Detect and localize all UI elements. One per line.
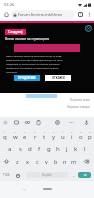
staticText: 4	[34, 130, 36, 133]
button[interactable]: ?123	[1, 169, 12, 181]
button[interactable]: j	[62, 142, 71, 155]
button[interactable]: Shift	[0, 155, 12, 167]
staticText: страница.	[6, 70, 18, 73]
staticText: n	[63, 158, 67, 165]
button[interactable]: Clipboard	[34, 118, 42, 126]
button[interactable]: Backspace	[78, 155, 94, 167]
button[interactable]: 6	[49, 129, 58, 142]
staticText: Најнови отвори	[67, 105, 90, 109]
staticText: ПРОДОЛЖИ	[18, 76, 36, 80]
staticText: w	[13, 133, 18, 141]
staticText: m	[71, 158, 77, 165]
staticText: o	[79, 133, 83, 141]
button[interactable]: s	[15, 142, 25, 155]
staticText: k	[74, 145, 78, 153]
staticText: i	[71, 133, 73, 141]
button[interactable]: 7	[58, 129, 67, 142]
staticText: 5	[44, 130, 46, 133]
button[interactable]: a	[5, 142, 15, 155]
button[interactable]: GIF	[12, 118, 20, 126]
button[interactable]: 0	[85, 129, 94, 142]
button[interactable]: English	[26, 172, 68, 178]
staticText: корисничко искуство и функционалност на …	[6, 58, 63, 61]
button[interactable]: Tabs	[76, 10, 85, 19]
button[interactable]: n	[60, 155, 69, 167]
staticText: u	[61, 133, 65, 141]
staticText: Внеси наслов на страницата	[5, 37, 50, 41]
button[interactable]: Settings	[53, 118, 61, 126]
button[interactable]: l	[80, 142, 89, 155]
button[interactable]: v	[42, 155, 51, 167]
staticText: Следувај	[8, 30, 23, 34]
button[interactable]: 5	[40, 129, 49, 142]
staticText: f	[38, 145, 41, 153]
button[interactable]: Close	[84, 24, 92, 32]
button[interactable]: More	[67, 118, 75, 126]
staticText: p	[88, 133, 92, 141]
button[interactable]: 1	[0, 129, 10, 142]
staticText: 3	[24, 130, 26, 133]
button[interactable]: h	[53, 142, 62, 155]
button[interactable]: .	[70, 171, 78, 179]
staticText: g	[47, 145, 51, 153]
staticText: 0	[89, 130, 91, 133]
staticText: x	[26, 158, 29, 165]
button[interactable]: ОТКАЖИ	[45, 75, 71, 81]
button[interactable]: forum.femina.mk/three	[11, 10, 75, 19]
button[interactable]: Close keyboard	[1, 118, 9, 126]
button[interactable]: c	[32, 155, 42, 167]
button[interactable]: z	[12, 155, 22, 167]
staticText: t	[43, 133, 46, 141]
button[interactable]: 4	[30, 129, 40, 142]
button[interactable]: b	[51, 155, 60, 167]
button[interactable]: More options	[85, 10, 93, 18]
staticText: 1	[80, 13, 82, 17]
staticText: Најнови теми	[70, 98, 90, 102]
staticText: 7	[62, 130, 64, 133]
staticText: .	[73, 172, 75, 179]
button[interactable]: g	[44, 142, 53, 155]
staticText: h	[56, 145, 60, 153]
button[interactable]: d	[25, 142, 35, 155]
staticText: 03:26	[4, 2, 15, 7]
button[interactable]: Voice input	[82, 118, 90, 126]
staticText: r	[34, 133, 37, 141]
button[interactable]: x	[22, 155, 32, 167]
button[interactable]: Home	[1, 9, 11, 19]
staticText: d	[28, 145, 32, 153]
staticText: приватност и условите за користење на ов…	[6, 66, 59, 69]
staticText: e	[23, 133, 27, 141]
button[interactable]: ПРОДОЛЖИ	[14, 75, 40, 81]
button[interactable]: Emoji	[13, 171, 22, 180]
button[interactable]: 3	[20, 129, 30, 142]
staticText: 2	[14, 130, 16, 133]
staticText: v	[45, 158, 48, 165]
button[interactable]: m	[69, 155, 78, 167]
button[interactable]: 8	[67, 129, 76, 142]
staticText: l	[84, 145, 86, 153]
staticText: c	[36, 158, 39, 165]
staticText: Продолжи се согласувате со нашата полити…	[6, 62, 60, 65]
staticText: s	[19, 145, 22, 153]
button[interactable]: Следувај	[5, 29, 26, 35]
staticText: z	[16, 158, 19, 165]
staticText: Оваа страница користи колачиња за да го …	[6, 54, 62, 57]
staticText: j	[66, 145, 68, 153]
staticText: y	[52, 133, 56, 141]
button[interactable]: k	[71, 142, 80, 155]
staticText: a	[8, 145, 12, 153]
button[interactable]: Enter	[78, 172, 91, 178]
staticText: b	[54, 158, 58, 165]
staticText: 9	[80, 130, 82, 133]
staticText: forum.femina.mk/three	[18, 12, 63, 17]
staticText: English	[42, 173, 52, 177]
button[interactable]: 9	[76, 129, 85, 142]
staticText: 1	[4, 130, 6, 133]
button[interactable]: Hide keyboard	[21, 186, 27, 192]
button[interactable]: 2	[10, 129, 20, 142]
button[interactable]: Stickers	[23, 118, 31, 126]
staticText: 8	[71, 130, 73, 133]
staticText: 6	[53, 130, 55, 133]
button[interactable]: f	[35, 142, 44, 155]
staticText: q	[3, 133, 7, 141]
